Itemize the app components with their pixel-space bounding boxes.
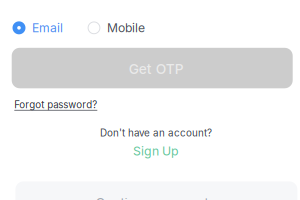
button[interactable]: Forgot password? xyxy=(14,98,97,112)
button[interactable]: Email xyxy=(11,17,64,38)
staticText: Mobile xyxy=(107,20,145,35)
staticText: Don't have an account? xyxy=(100,127,212,139)
staticText: Continue as guest xyxy=(95,196,208,200)
staticText: Sign Up xyxy=(133,143,179,158)
button[interactable]: Get OTP xyxy=(12,48,293,88)
button[interactable]: Mobile xyxy=(86,17,146,38)
button[interactable]: Continue as guest xyxy=(15,181,297,200)
button[interactable]: Sign Up xyxy=(131,142,181,159)
staticText: Email xyxy=(32,20,63,35)
staticText: Get OTP xyxy=(129,61,184,77)
staticText: Forgot password? xyxy=(14,99,97,111)
